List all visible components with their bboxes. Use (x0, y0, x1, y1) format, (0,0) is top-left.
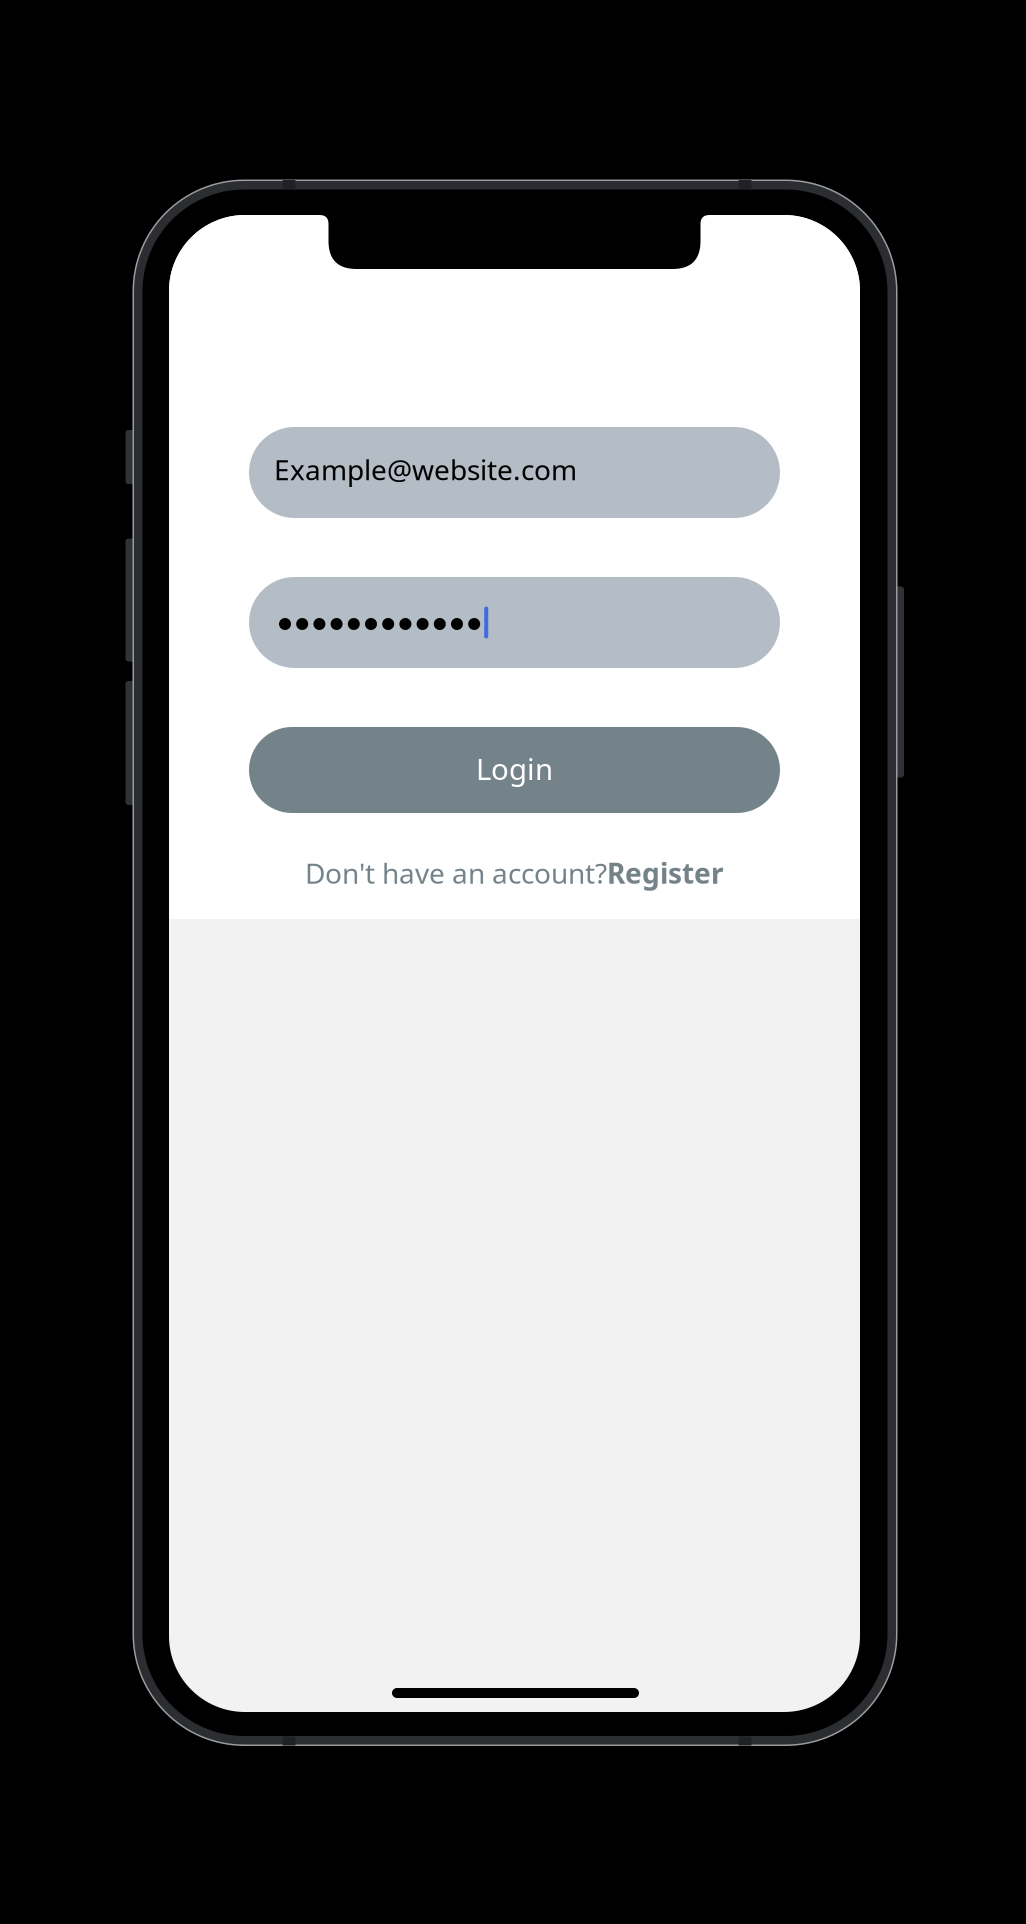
staticText: Example@website.com (274, 451, 577, 488)
button[interactable]: Register (607, 854, 724, 892)
button[interactable]: Password (249, 577, 780, 668)
staticText: Don't have an account? (305, 854, 607, 892)
button[interactable]: Login (249, 727, 780, 813)
staticText: Register (607, 854, 724, 892)
staticText: Login (476, 749, 553, 788)
button[interactable]: Email address (249, 427, 780, 518)
